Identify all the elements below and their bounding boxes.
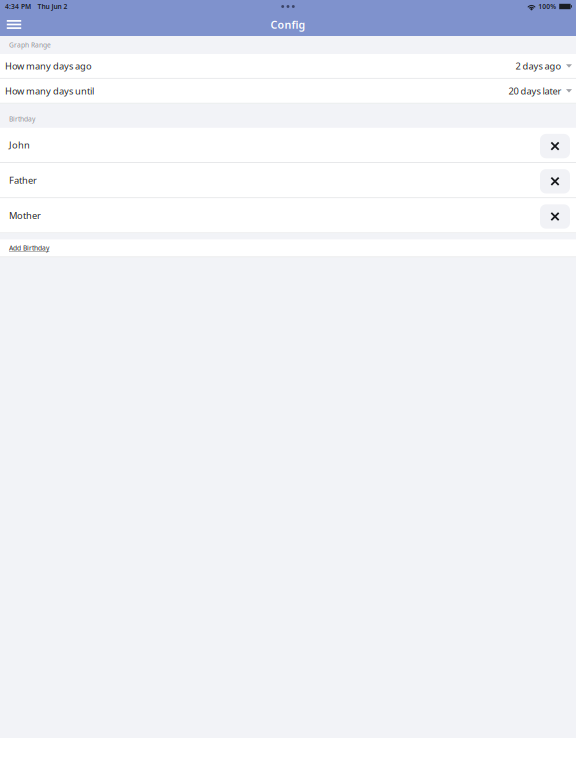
staticText: Graph Range	[9, 41, 51, 49]
button[interactable]: How many days until	[0, 79, 576, 104]
button[interactable]: How many days ago	[0, 54, 576, 79]
staticText: 4:34 PM	[5, 2, 31, 11]
staticText: 2 days ago	[515, 60, 561, 72]
staticText: Config	[270, 17, 305, 32]
staticText: 20 days later	[508, 85, 561, 97]
button[interactable]: Remove Mother	[540, 202, 570, 229]
button[interactable]: Add Birthday	[0, 239, 576, 257]
staticText: Birthday	[9, 114, 35, 123]
staticText: How many days until	[5, 85, 94, 97]
staticText: Add Birthday	[9, 243, 49, 252]
staticText: How many days ago	[5, 60, 92, 72]
staticText: Father	[9, 174, 37, 186]
staticText: Mother	[9, 209, 41, 221]
button[interactable]: Remove Father	[540, 167, 570, 193]
staticText: John	[9, 139, 30, 151]
staticText: Thu Jun 2	[37, 2, 67, 11]
staticText: 100%	[538, 2, 556, 11]
button[interactable]: Menu	[0, 13, 28, 36]
button[interactable]: Remove John	[540, 131, 570, 158]
